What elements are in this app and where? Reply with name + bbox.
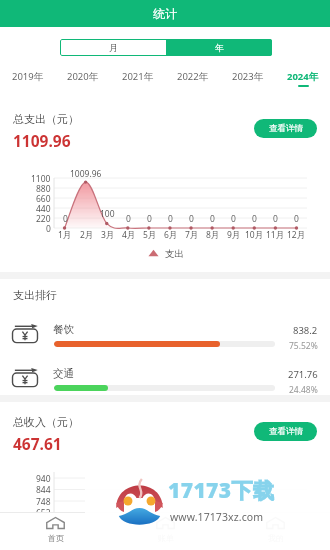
staticText: 1100: [31, 173, 51, 185]
staticText: 844: [36, 484, 51, 495]
button[interactable]: 餐饮: [0, 318, 330, 350]
staticText: 660: [36, 193, 51, 205]
staticText: 0: [189, 213, 194, 225]
staticText: 24.48%: [289, 384, 318, 393]
staticText: 7月: [185, 229, 199, 241]
staticText: 0: [126, 213, 131, 225]
button[interactable]: 2019年: [0, 70, 55, 90]
staticText: 3月: [101, 229, 115, 241]
staticText: 查看详情: [269, 426, 303, 437]
staticText: 440: [36, 203, 51, 215]
button[interactable]: 2020年: [55, 70, 110, 90]
staticText: 5月: [143, 229, 157, 241]
staticText: 940: [36, 473, 51, 484]
staticText: 4月: [122, 229, 136, 241]
staticText: 查看详情: [269, 123, 303, 134]
staticText: 271.76: [288, 368, 318, 381]
button[interactable]: 月: [60, 39, 166, 56]
staticText: 12月: [287, 229, 306, 241]
staticText: 2022年: [177, 70, 209, 83]
staticText: 0: [252, 213, 257, 225]
staticText: 0: [210, 213, 215, 225]
staticText: 2月: [80, 229, 94, 241]
staticText: 1009.96: [70, 168, 102, 180]
staticText: 1109.96: [13, 130, 71, 151]
button[interactable]: 2022年: [165, 70, 220, 90]
staticText: 0: [63, 213, 68, 225]
button[interactable]: 账单: [110, 512, 220, 550]
staticText: 9月: [227, 229, 241, 241]
staticText: 统计: [153, 6, 177, 21]
staticText: 75.52%: [289, 340, 318, 349]
staticText: 0: [46, 223, 51, 235]
staticText: 0: [147, 213, 152, 225]
staticText: 月: [109, 42, 118, 53]
staticText: 880: [36, 183, 51, 195]
staticText: 838.2: [293, 324, 318, 337]
staticText: 2023年: [232, 70, 264, 83]
staticText: 11月: [266, 229, 285, 241]
staticText: 2020年: [67, 70, 99, 83]
staticText: 首页: [48, 533, 64, 543]
staticText: 8月: [206, 229, 220, 241]
staticText: 0: [231, 213, 236, 225]
staticText: 17173下载: [168, 476, 275, 505]
staticText: www.17173xz.com: [170, 510, 264, 524]
staticText: 1月: [58, 229, 72, 241]
staticText: 10月: [245, 229, 264, 241]
button[interactable]: 2024年: [275, 70, 330, 90]
staticText: 总支出（元）: [13, 112, 79, 126]
staticText: 100: [100, 208, 115, 220]
staticText: 6月: [164, 229, 178, 241]
staticText: 2019年: [12, 70, 44, 83]
button[interactable]: 交通: [0, 362, 330, 394]
button[interactable]: 2021年: [110, 70, 165, 90]
button[interactable]: 2023年: [220, 70, 275, 90]
staticText: 220: [36, 213, 51, 225]
staticText: 0: [294, 213, 299, 225]
button[interactable]: 年: [166, 39, 272, 56]
staticText: 总收入（元）: [13, 415, 79, 429]
staticText: 交通: [53, 367, 74, 380]
staticText: 支出: [165, 248, 184, 260]
staticText: 652: [36, 507, 51, 518]
staticText: 0: [168, 213, 173, 225]
button[interactable]: 查看详情: [254, 422, 317, 441]
button[interactable]: 我的: [220, 512, 330, 550]
button[interactable]: 查看详情: [254, 119, 317, 138]
staticText: 餐饮: [53, 323, 74, 336]
staticText: 2021年: [122, 70, 154, 83]
staticText: 支出排行: [13, 288, 57, 302]
staticText: 0: [273, 213, 278, 225]
staticText: 748: [36, 496, 51, 507]
button[interactable]: 首页: [0, 512, 110, 550]
staticText: 年: [215, 42, 224, 53]
staticText: 2024年: [287, 70, 319, 83]
staticText: 467.61: [13, 433, 62, 454]
